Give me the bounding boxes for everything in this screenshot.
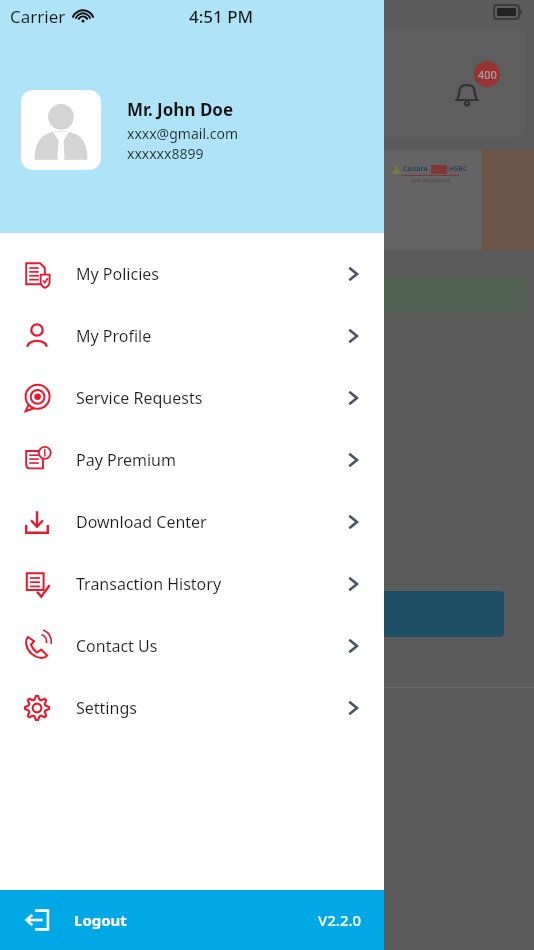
staticText: Logout (74, 910, 127, 930)
button[interactable]: Contact Us (0, 615, 384, 677)
staticText: xxxx@gmail.com (127, 124, 239, 143)
staticText: Carrier (10, 5, 66, 28)
staticText: Contact Us (76, 635, 158, 657)
staticText: Canara (403, 164, 428, 174)
staticText: V2.2.0 (318, 910, 362, 930)
staticText: singh (14, 389, 56, 411)
staticText: 400 (478, 67, 497, 82)
staticText: Mr. John Doe (127, 98, 234, 121)
staticText: 4:51 PM (189, 5, 254, 28)
staticText: ES. (18, 160, 37, 178)
button[interactable]: Logout (0, 890, 384, 950)
staticText: an Life Plus (14, 334, 111, 357)
button[interactable]: Transaction History (0, 553, 384, 615)
staticText: Service Requests (76, 387, 203, 409)
button[interactable]: Settings (0, 677, 384, 739)
button[interactable]: My Profile (0, 305, 384, 367)
button[interactable]: Service Requests (0, 367, 384, 429)
button[interactable]: My Policies (0, 243, 384, 305)
staticText: LIFE INSURANCE (411, 178, 450, 185)
staticText: My Profile (76, 325, 152, 347)
staticText: Download Center (76, 511, 207, 533)
staticText: Settings (76, 697, 137, 719)
staticText: My Policies (76, 263, 159, 285)
button[interactable]: Download Center (0, 491, 384, 553)
staticText: Creation Plans (44, 231, 102, 242)
staticText: Transaction History (76, 573, 222, 595)
staticText: Pay Premium (76, 449, 176, 471)
button[interactable]: Pay Premium (0, 429, 384, 491)
staticText: HSBC (449, 164, 468, 174)
staticText: um paying (regular) (14, 285, 143, 303)
staticText: xxxxxx8899 (127, 144, 204, 163)
